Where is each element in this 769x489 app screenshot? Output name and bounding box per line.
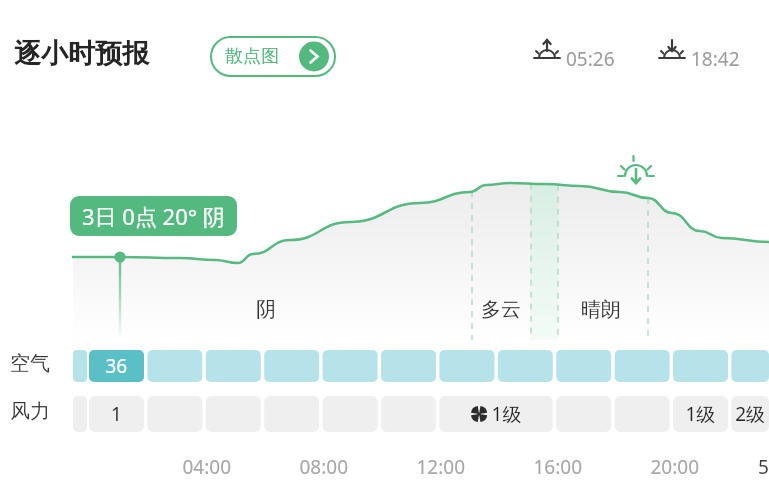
button[interactable]: 逐小时温度曲线图 <box>73 140 769 340</box>
button[interactable]: 散点图 <box>211 37 335 76</box>
button[interactable]: 日出时间 05:26 <box>527 37 630 74</box>
button[interactable]: 空气质量 <box>0 346 769 386</box>
button[interactable]: 日落时间 18:42 <box>651 37 756 74</box>
button[interactable]: 风力 <box>0 392 769 436</box>
